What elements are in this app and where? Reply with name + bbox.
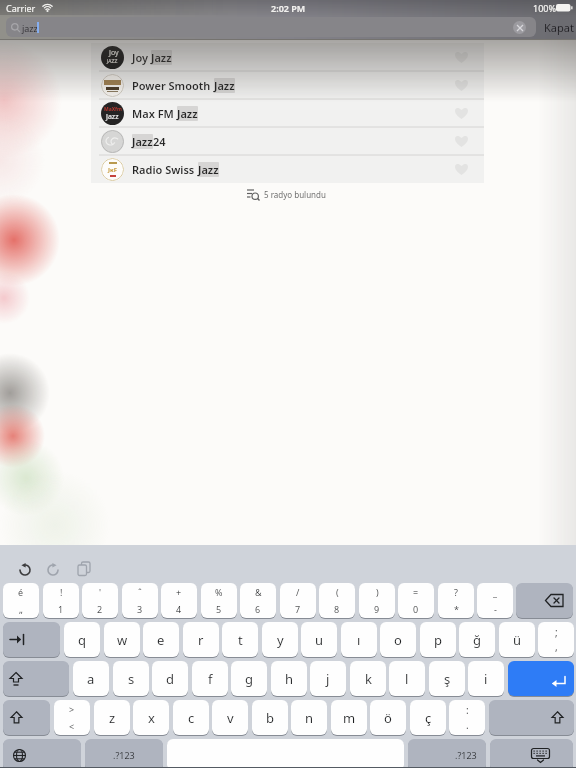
staticText: u [315,631,324,649]
staticText: h [285,670,294,688]
button[interactable] [513,21,526,34]
staticText: Joy [132,50,151,65]
staticText: : [466,703,469,717]
button[interactable]: ? [438,583,474,618]
staticText: x [148,709,155,727]
staticText: n [305,709,314,727]
button[interactable]: ( [319,583,355,618]
staticText: ı [357,631,361,649]
staticText: 100% [533,2,556,14]
button[interactable]: ş [429,661,465,696]
button[interactable]: ö [370,700,406,735]
button[interactable]: ı [341,622,377,657]
button[interactable]: = [398,583,434,618]
staticText: z [109,709,116,727]
button[interactable]: 5 radyo bulundu [247,188,326,201]
button[interactable]: Power Smooth [91,71,484,99]
button[interactable]: ğ [459,622,495,657]
staticText: / [296,586,300,598]
button[interactable]: y [262,622,298,657]
button[interactable]: b [252,700,288,735]
staticText: ğ [473,631,481,649]
button[interactable]: JкF [91,155,484,183]
button[interactable]: ! [43,583,79,618]
button[interactable]: ; [538,622,574,657]
staticText: ö [384,709,392,727]
button[interactable]: : [449,700,485,735]
button[interactable]: ü [499,622,535,657]
button[interactable]: n [291,700,327,735]
staticText: _ [493,586,497,598]
button[interactable]: g [231,661,267,696]
button[interactable] [508,661,574,696]
button[interactable]: d [152,661,188,696]
button[interactable]: k [350,661,386,696]
button[interactable]: j [310,661,346,696]
button[interactable] [3,739,81,768]
button[interactable]: f [192,661,228,696]
button[interactable]: m [331,700,367,735]
staticText: ! [60,586,63,598]
button[interactable]: r [183,622,219,657]
staticText: t [238,631,243,649]
button[interactable]: o [380,622,416,657]
button[interactable]: ) [359,583,395,618]
button[interactable] [167,739,404,768]
button[interactable]: .?123 [85,739,163,768]
button[interactable] [3,622,60,657]
button[interactable]: ' [82,583,118,618]
button[interactable]: z [94,700,130,735]
staticText: b [266,709,274,727]
button[interactable]: q [64,622,100,657]
button[interactable]: l [389,661,425,696]
button[interactable] [516,583,573,618]
button[interactable] [3,700,50,735]
staticText: Jazz [106,112,119,122]
button[interactable]: jazz [6,17,536,37]
staticText: Max FM [132,106,177,121]
staticText: Jazz [132,134,153,149]
button[interactable]: u [301,622,337,657]
button[interactable] [3,661,69,696]
button[interactable]: p [420,622,456,657]
button[interactable]: / [280,583,316,618]
button[interactable]: & [240,583,276,618]
button[interactable]: s [113,661,149,696]
button[interactable]: ˆ [122,583,158,618]
staticText: , [555,640,558,654]
button[interactable] [490,739,573,768]
staticText: o [394,631,402,649]
button[interactable]: Kapat [541,14,576,40]
staticText: + [176,586,182,598]
button[interactable]: Joy [91,43,484,71]
staticText: j [326,670,330,688]
staticText: w [117,631,128,649]
button[interactable]: c [173,700,209,735]
button[interactable]: .?123 [408,739,486,768]
button[interactable] [489,700,574,735]
button[interactable]: w [104,622,140,657]
staticText: 7 [295,603,301,615]
button[interactable]: x [133,700,169,735]
staticText: Jazz [214,78,235,93]
button[interactable]: MaXfm [91,99,484,127]
button[interactable]: ç [410,700,446,735]
staticText: & [255,586,262,598]
button[interactable]: h [271,661,307,696]
button[interactable]: t [222,622,258,657]
button[interactable]: + [161,583,197,618]
button[interactable]: > [54,700,90,735]
button[interactable]: Jazz [91,127,484,155]
button[interactable]: a [73,661,109,696]
button[interactable]: v [212,700,248,735]
button[interactable]: i [468,661,504,696]
button[interactable]: % [201,583,237,618]
button[interactable]: _ [477,583,513,618]
staticText: i [484,670,488,688]
button[interactable]: é [3,583,39,618]
staticText: r [198,631,204,649]
button[interactable]: e [143,622,179,657]
staticText: Radio Swiss [132,162,198,177]
staticText: c [188,709,195,727]
staticText: ş [444,670,451,688]
